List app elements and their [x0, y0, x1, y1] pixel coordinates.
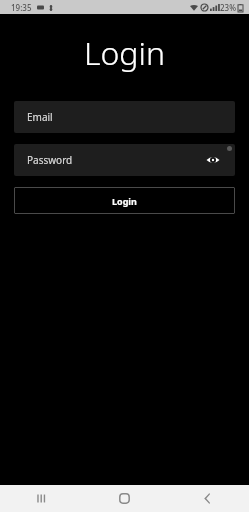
button[interactable]: Back: [166, 485, 249, 512]
button[interactable]: Show password: [203, 150, 223, 170]
staticText: Login: [112, 195, 137, 207]
button[interactable]: Recent apps: [0, 485, 83, 512]
staticText: Password: [27, 153, 73, 167]
button[interactable]: Login: [14, 187, 235, 214]
staticText: 19:35: [11, 2, 32, 13]
button[interactable]: Email: [14, 101, 235, 133]
button[interactable]: Password: [14, 144, 235, 176]
staticText: Email: [27, 110, 53, 124]
button[interactable]: Home: [83, 485, 166, 512]
staticText: Login: [0, 31, 249, 75]
staticText: 23%: [220, 2, 236, 13]
